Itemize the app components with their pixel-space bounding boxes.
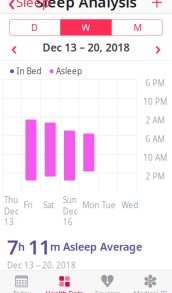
staticText: Sleep Analysis: [35, 0, 136, 12]
staticText: 10 PM: [143, 96, 167, 107]
staticText: In Bed: [16, 66, 41, 76]
staticText: 11: [28, 233, 50, 260]
staticText: ‹: [8, 0, 15, 17]
button[interactable]: Health Data: [43, 271, 86, 293]
staticText: Dec 13: [4, 206, 19, 227]
staticText: Sleep: [16, 0, 50, 11]
staticText: W: [81, 21, 90, 34]
button[interactable]: M: [112, 19, 163, 35]
staticText: +: [150, 0, 163, 17]
button[interactable]: ♥: [86, 271, 129, 293]
staticText: 2 PM: [145, 171, 164, 182]
button[interactable]: Previous week: [4, 39, 24, 55]
button[interactable]: Next week: [148, 39, 168, 55]
staticText: 6 AM: [145, 134, 164, 144]
staticText: M: [133, 21, 141, 34]
staticText: Sources: [95, 289, 120, 293]
staticText: ♥: [99, 272, 115, 291]
button[interactable]: D: [9, 19, 60, 35]
staticText: ✽: [143, 272, 158, 291]
staticText: Mon: [82, 200, 99, 210]
staticText: Today: [12, 289, 30, 293]
button[interactable]: Add data: [146, 0, 168, 11]
staticText: 2 AM: [145, 115, 164, 126]
staticText: Health Data: [45, 289, 83, 293]
staticText: Asleep: [56, 66, 82, 76]
staticText: ‹: [11, 35, 17, 60]
staticText: 10 AM: [143, 152, 167, 163]
staticText: Wed: [121, 200, 138, 210]
staticText: Medical ID: [133, 289, 167, 293]
staticText: Dec 16: [63, 206, 78, 227]
staticText: ›: [155, 35, 161, 60]
staticText: Sat: [43, 200, 54, 210]
button[interactable]: ‹: [4, 0, 54, 20]
staticText: Sun: [63, 194, 77, 205]
staticText: Dec 13 – 20, 2018: [42, 40, 129, 54]
staticText: h: [18, 240, 28, 254]
staticText: Fri: [24, 200, 33, 210]
staticText: Dec 13 – 20, 2018: [7, 260, 76, 271]
staticText: 7: [7, 233, 18, 260]
staticText: m: [50, 240, 63, 254]
staticText: 6 PM: [145, 78, 164, 88]
staticText: Thu: [4, 194, 18, 205]
staticText: D: [31, 21, 38, 34]
button[interactable]: W: [60, 19, 111, 35]
staticText: Asleep Average: [63, 240, 142, 254]
staticText: ↓: [104, 276, 111, 285]
button[interactable]: Today: [0, 271, 43, 293]
staticText: Tue: [102, 200, 116, 210]
button[interactable]: ✽: [129, 271, 172, 293]
